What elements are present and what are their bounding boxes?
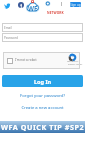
- button[interactable]: Create a new account: [0, 105, 85, 111]
- staticText: NETWORK: [47, 11, 64, 15]
- staticText: Log In: [34, 78, 52, 85]
- button[interactable]: Sign up: [70, 2, 81, 7]
- staticText: Email: [4, 26, 12, 30]
- staticText: Sign up: [70, 3, 81, 7]
- staticText: WFA QUICK TIP #SP2: [1, 122, 85, 132]
- button[interactable]: Password: [2, 33, 83, 42]
- button[interactable]: Forgot your password?: [0, 93, 85, 99]
- staticText: I'm not a robot: [15, 58, 37, 62]
- button[interactable]: Log In: [2, 75, 83, 87]
- button[interactable]: Twitter: [4, 2, 11, 9]
- staticText: Privacy - Terms: [68, 63, 83, 66]
- button[interactable]: WFA QUICK TIP #SP2: [0, 121, 85, 133]
- button[interactable]: I'm not a robot: [7, 58, 13, 64]
- button[interactable]: Facebook: [18, 2, 24, 8]
- staticText: reCAPTCHA: [67, 60, 79, 63]
- staticText: WF: [28, 4, 38, 12]
- button[interactable]: Email: [2, 23, 83, 32]
- staticText: Password: [4, 36, 18, 40]
